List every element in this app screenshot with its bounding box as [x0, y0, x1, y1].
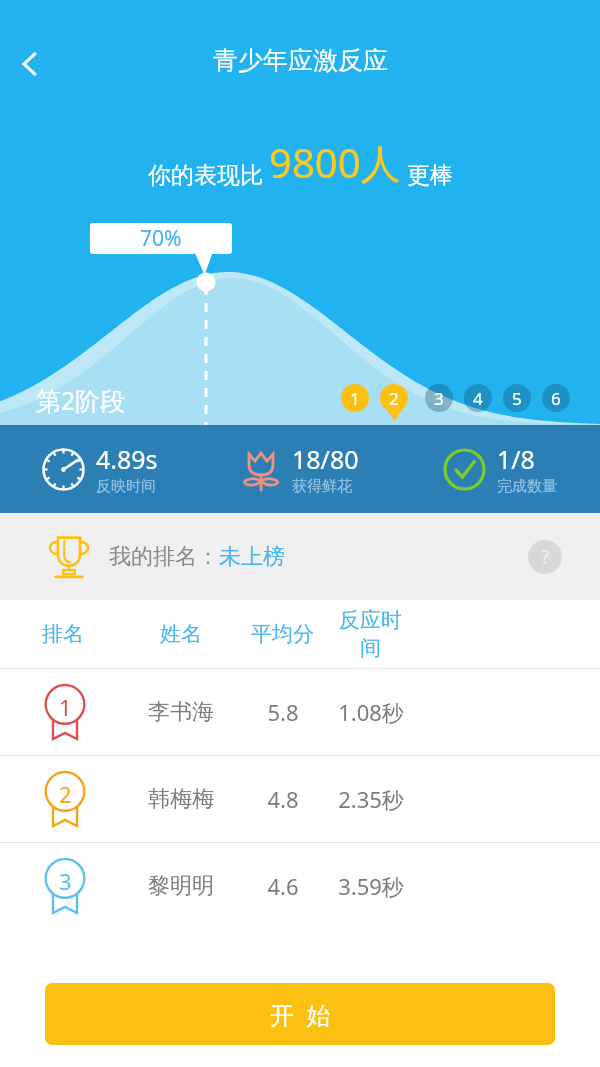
button[interactable]: 4.89s	[0, 442, 200, 496]
staticText: 3	[59, 866, 72, 896]
button[interactable]: 1/8	[400, 442, 600, 496]
staticText: 2	[389, 387, 399, 410]
staticText: 1	[59, 692, 72, 722]
button[interactable]: 开 始	[45, 983, 555, 1045]
staticText: 你的表现比	[148, 161, 263, 190]
staticText: 2	[59, 779, 72, 809]
button[interactable]: 1	[0, 669, 600, 755]
button[interactable]: 4	[464, 384, 492, 412]
staticText: 青少年应激反应	[213, 45, 388, 76]
staticText: 2.35秒	[338, 784, 404, 814]
button[interactable]: Help	[528, 540, 562, 574]
staticText: 4	[473, 387, 483, 410]
staticText: 4.89s	[96, 442, 158, 476]
staticText: 6	[551, 387, 561, 410]
staticText: 3.59秒	[338, 871, 404, 901]
button[interactable]: 3	[425, 384, 453, 412]
staticText: 更棒	[407, 161, 453, 190]
staticText: 排名	[42, 621, 84, 647]
button[interactable]: 2	[0, 756, 600, 842]
button[interactable]: 2	[380, 384, 408, 412]
staticText: 4.8	[267, 784, 299, 814]
button[interactable]: 5	[503, 384, 531, 412]
staticText: 黎明明	[148, 872, 214, 900]
button[interactable]: 6	[542, 384, 570, 412]
staticText: 4.6	[267, 871, 299, 901]
staticText: 18/80	[292, 442, 359, 476]
button[interactable]: 1	[341, 384, 369, 412]
staticText: 开 始	[270, 998, 331, 1031]
staticText: 我的排名：	[109, 543, 219, 571]
staticText: 姓名	[160, 621, 202, 647]
staticText: 第2阶段	[36, 383, 126, 417]
staticText: 1.08秒	[338, 697, 404, 727]
staticText: 5.8	[267, 697, 299, 727]
staticText: 平均分	[251, 621, 314, 647]
staticText: 9800人	[269, 135, 401, 190]
button[interactable]: 3	[0, 843, 600, 929]
staticText: ?	[541, 544, 550, 570]
staticText: 李书海	[148, 698, 214, 726]
staticText: 70%	[140, 224, 182, 253]
staticText: 完成数量	[497, 477, 557, 496]
staticText: 1	[350, 387, 360, 410]
button[interactable]: 18/80	[200, 442, 400, 496]
button[interactable]: Back	[4, 38, 56, 90]
staticText: 3	[434, 387, 444, 410]
staticText: 反映时间	[96, 477, 156, 496]
staticText: 反应时间	[330, 607, 411, 661]
staticText: 获得鲜花	[292, 477, 352, 496]
staticText: 5	[512, 387, 522, 410]
button[interactable]: 我的排名：	[0, 513, 600, 600]
staticText: 未上榜	[219, 543, 285, 571]
staticText: 韩梅梅	[148, 785, 214, 813]
staticText: 1/8	[497, 442, 535, 476]
